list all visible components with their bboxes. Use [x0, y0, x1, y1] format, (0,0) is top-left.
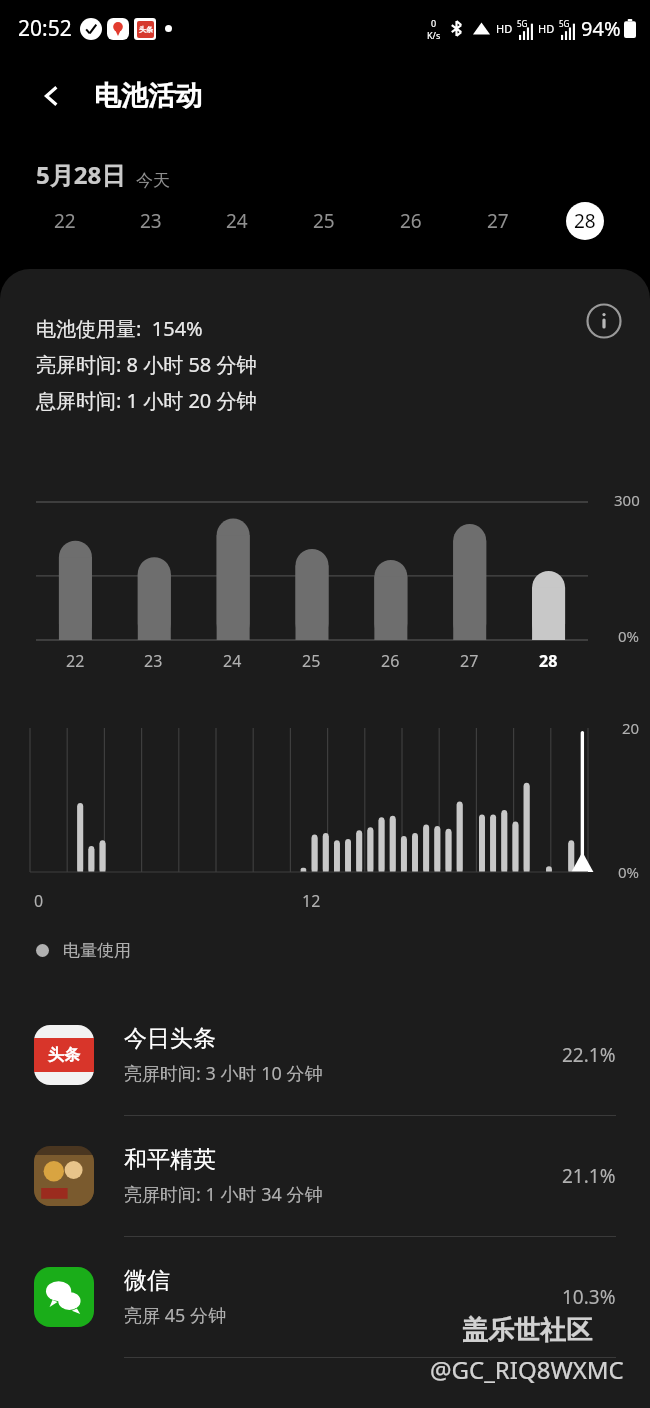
staticText: 28: [539, 650, 558, 672]
staticText: 10.3%: [562, 1284, 616, 1310]
staticText: 23: [144, 650, 163, 672]
staticText: 头条: [48, 1045, 80, 1065]
staticText: 盖乐世社区: [462, 1314, 592, 1347]
staticText: 电池使用量: 154%: [36, 315, 203, 342]
staticText: 25: [313, 208, 335, 234]
staticText: @GC_RIQ8WXMC: [430, 1353, 624, 1386]
staticText: 22.1%: [562, 1042, 616, 1068]
staticText: 和平精英: [124, 1145, 216, 1174]
staticText: 5G: [559, 18, 570, 29]
button[interactable]: 27: [454, 191, 541, 251]
button[interactable]: Info: [582, 299, 626, 343]
button[interactable]: 25: [280, 191, 367, 251]
staticText: 20:52: [18, 14, 72, 43]
staticText: 0%: [618, 626, 640, 646]
staticText: 94%: [581, 15, 621, 42]
staticText: 亮屏时间: 8 小时 58 分钟: [36, 351, 257, 378]
staticText: 22: [54, 208, 76, 234]
staticText: 0: [431, 17, 437, 29]
staticText: 12: [302, 890, 321, 912]
staticText: 电池活动: [94, 79, 202, 113]
staticText: 25: [302, 650, 321, 672]
staticText: 28: [574, 208, 596, 234]
staticText: 微信: [124, 1266, 170, 1295]
staticText: 电量使用: [63, 940, 131, 961]
staticText: 头条: [139, 25, 153, 34]
staticText: 今日头条: [124, 1024, 216, 1053]
staticText: 0%: [618, 862, 640, 882]
button[interactable]: 28: [541, 191, 628, 251]
button[interactable]: 微信: [0, 1237, 650, 1358]
staticText: 24: [223, 650, 242, 672]
staticText: 27: [460, 650, 479, 672]
button[interactable]: 22: [22, 191, 108, 251]
staticText: K/s: [427, 29, 441, 41]
button[interactable]: 和平精英: [0, 1116, 650, 1237]
staticText: 0: [34, 890, 44, 912]
button[interactable]: 23: [108, 191, 194, 251]
staticText: 亮屏时间: 1 小时 34 分钟: [124, 1182, 323, 1207]
button[interactable]: Back: [28, 72, 76, 120]
staticText: 5月28日: [36, 158, 126, 191]
staticText: 21.1%: [562, 1163, 616, 1189]
staticText: HD: [496, 21, 513, 36]
staticText: HD: [538, 21, 555, 36]
staticText: 亮屏 45 分钟: [124, 1303, 226, 1328]
staticText: 26: [381, 650, 400, 672]
button[interactable]: 头条: [0, 995, 650, 1116]
staticText: 26: [400, 208, 422, 234]
staticText: 息屏时间: 1 小时 20 分钟: [36, 387, 257, 414]
staticText: 5G: [517, 18, 528, 29]
staticText: 23: [140, 208, 162, 234]
staticText: 22: [66, 650, 85, 672]
staticText: 亮屏时间: 3 小时 10 分钟: [124, 1061, 323, 1086]
button[interactable]: 26: [367, 191, 454, 251]
staticText: 24: [226, 208, 248, 234]
staticText: 300: [614, 490, 640, 510]
staticText: 今天: [136, 170, 170, 191]
button[interactable]: 24: [194, 191, 280, 251]
staticText: 20: [622, 718, 640, 738]
staticText: 27: [487, 208, 509, 234]
